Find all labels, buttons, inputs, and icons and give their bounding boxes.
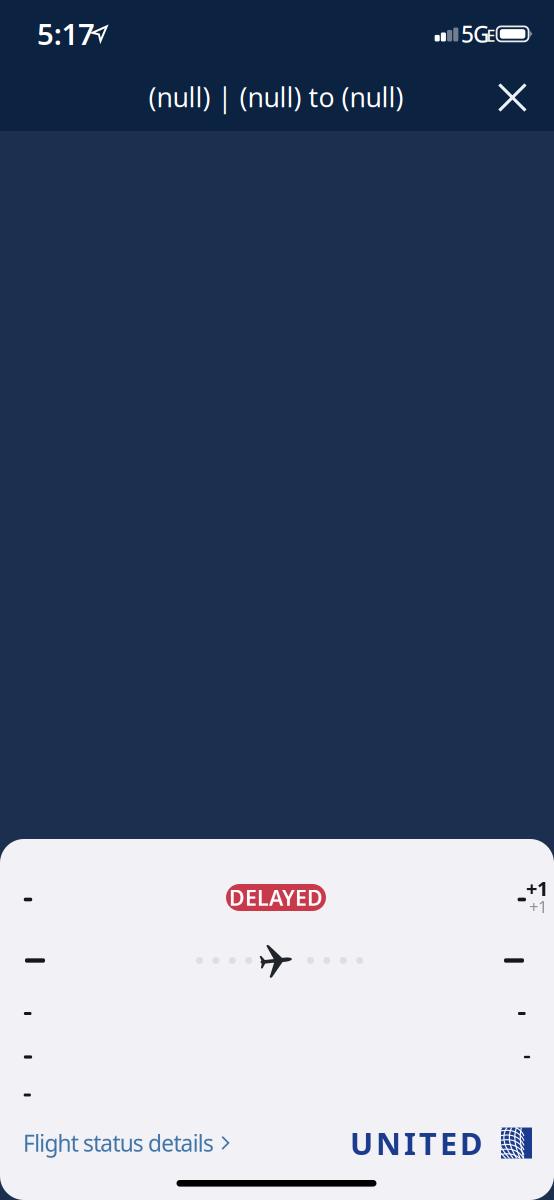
button[interactable]: Close <box>489 74 535 120</box>
staticText: +1 <box>526 875 548 901</box>
staticText: E <box>487 25 496 46</box>
staticText: +1 <box>529 896 547 917</box>
staticText: UNITED <box>350 1123 482 1163</box>
staticText: 5:17 <box>37 14 95 53</box>
staticText: 5G <box>461 19 489 49</box>
staticText: (null) | (null) to (null) <box>148 79 403 115</box>
staticText: Flight status details <box>23 1128 214 1158</box>
button[interactable]: Flight status details <box>23 1128 230 1158</box>
staticText: DELAYED <box>229 883 323 912</box>
